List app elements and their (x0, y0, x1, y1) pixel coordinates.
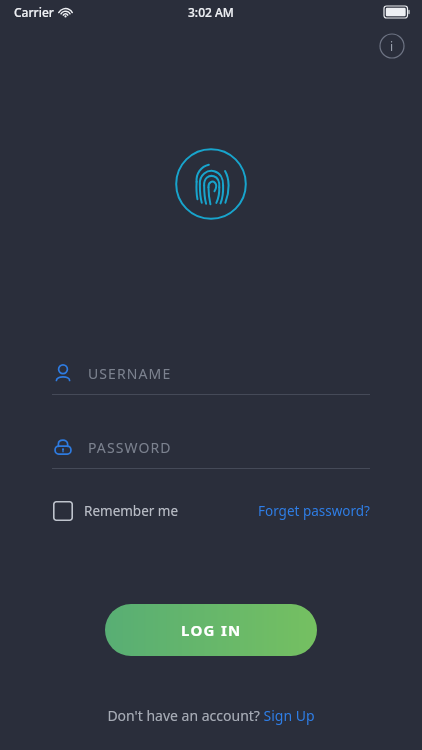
staticText: USERNAME (88, 364, 172, 383)
button[interactable]: USERNAME (52, 358, 370, 395)
staticText: Forget password? (258, 502, 370, 520)
button[interactable]: Forget password? (258, 502, 370, 520)
staticText: 3:02 AM (188, 4, 234, 20)
button[interactable]: PASSWORD (52, 432, 370, 469)
button[interactable]: LOG IN (105, 604, 317, 656)
staticText: PASSWORD (88, 438, 172, 457)
button[interactable]: Information (376, 30, 408, 62)
button[interactable]: Remember me (52, 500, 179, 522)
staticText: Carrier (14, 4, 54, 20)
staticText: Don't have an account? Sign Up (107, 706, 315, 725)
staticText: i (390, 38, 394, 54)
staticText: LOG IN (181, 620, 242, 640)
button[interactable]: Don't have an account? Sign Up (107, 706, 315, 725)
staticText: Remember me (84, 502, 179, 520)
button[interactable]: Fingerprint (175, 148, 247, 220)
